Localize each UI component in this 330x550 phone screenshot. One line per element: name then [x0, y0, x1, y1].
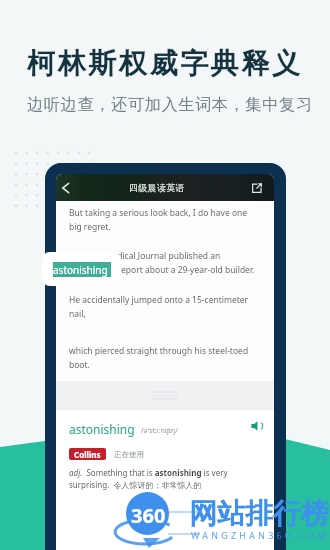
staticText: 边听边查，还可加入生词本，集中复习 — [27, 94, 313, 115]
staticText: But taking a serious look back, I do hav… — [69, 207, 248, 219]
staticText: which pierced straight through his steel… — [69, 345, 249, 357]
button[interactable]: Back — [56, 174, 74, 201]
staticText: 网站排行榜 — [189, 496, 329, 531]
staticText: astonishing report about a 29-year-old b… — [69, 264, 255, 276]
staticText: /ə'stɔːnɪʃɪŋ/ — [141, 426, 178, 436]
staticText: 柯林斯权威字典释义 — [27, 46, 303, 81]
staticText: boot. — [69, 359, 90, 371]
staticText: adj. Something that is astonishing is ve… — [69, 467, 265, 490]
staticText: A British Medical Journal published an — [69, 250, 221, 262]
staticText: He accidentally jumped onto a 15-centime… — [69, 294, 249, 306]
staticText: WANGZHAN360.COM — [191, 529, 329, 541]
staticText: astonishing — [69, 421, 135, 437]
button[interactable]: Share — [239, 174, 274, 201]
staticText: Collins — [74, 449, 101, 460]
staticText: 正在使用 — [114, 450, 144, 459]
button[interactable]: Play pronunciation — [251, 420, 263, 432]
staticText: nail, — [69, 308, 86, 320]
staticText: big regret. — [69, 221, 111, 233]
staticText: 360 — [131, 502, 166, 525]
staticText: 四级晨读英语 — [129, 182, 185, 193]
staticText: astonishing — [53, 263, 108, 277]
